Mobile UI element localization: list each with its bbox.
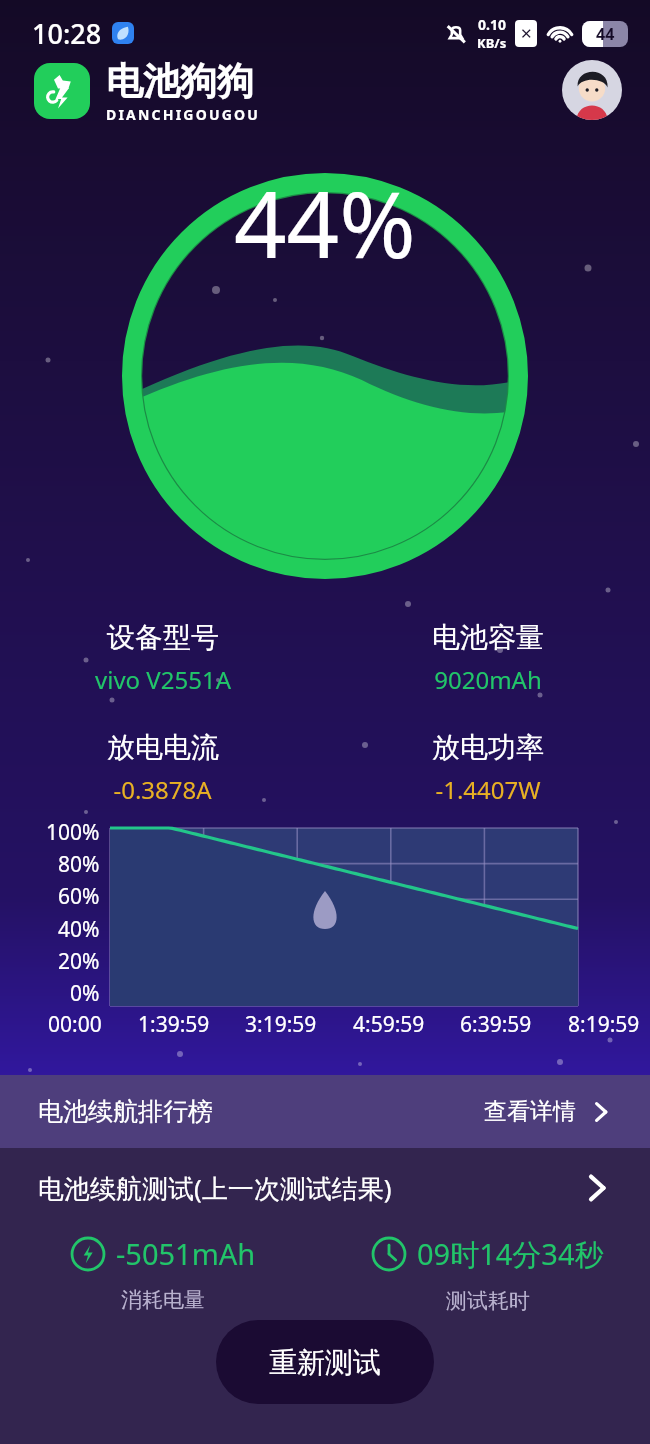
staticText: 8:19:59 — [568, 1010, 640, 1039]
staticText: 40% — [58, 915, 100, 944]
staticText: 4:59:59 — [353, 1010, 425, 1039]
staticText: 0.10 — [478, 15, 506, 34]
staticText: 放电功率 — [432, 730, 544, 765]
staticText: 10:28 — [32, 15, 102, 52]
button[interactable]: 电池续航测试(上一次测试结果) — [0, 1148, 650, 1228]
button[interactable]: 电池续航排行榜 — [0, 1075, 650, 1148]
staticText: 电池续航测试(上一次测试结果) — [38, 1170, 392, 1206]
staticText: 电池狗狗 — [106, 58, 254, 105]
staticText: 重新测试 — [269, 1345, 381, 1380]
staticText: 20% — [58, 947, 100, 976]
button[interactable]: 重新测试 — [216, 1320, 434, 1404]
staticText: 44% — [234, 160, 416, 285]
button[interactable]: Profile — [562, 60, 622, 120]
staticText: 60% — [58, 882, 100, 911]
staticText: vivo V2551A — [95, 663, 231, 696]
staticText: 消耗电量 — [121, 1287, 205, 1313]
staticText: -0.3878A — [113, 773, 212, 806]
staticText: -5051mAh — [116, 1234, 256, 1273]
staticText: 0% — [70, 979, 100, 1008]
staticText: 100% — [46, 818, 100, 847]
staticText: 09时14分34秒 — [417, 1234, 604, 1274]
staticText: 00:00 — [48, 1010, 102, 1039]
staticText: 1:39:59 — [138, 1010, 210, 1039]
staticText: 电池续航排行榜 — [38, 1096, 213, 1127]
staticText: KB/s — [477, 34, 507, 52]
staticText: 设备型号 — [107, 620, 219, 655]
staticText: 放电电流 — [107, 730, 219, 765]
staticText: 测试耗时 — [446, 1288, 530, 1314]
staticText: 9020mAh — [434, 663, 542, 696]
staticText: 电池容量 — [432, 620, 544, 655]
staticText: 查看详情 — [484, 1097, 576, 1126]
staticText: -1.4407W — [435, 773, 541, 806]
staticText: 6:39:59 — [460, 1010, 532, 1039]
staticText: 3:19:59 — [245, 1010, 317, 1039]
staticText: 80% — [58, 850, 100, 879]
staticText: DIANCHIGOUGOU — [106, 105, 261, 124]
staticText: 44 — [596, 23, 615, 45]
staticText: ✕ — [520, 25, 533, 42]
